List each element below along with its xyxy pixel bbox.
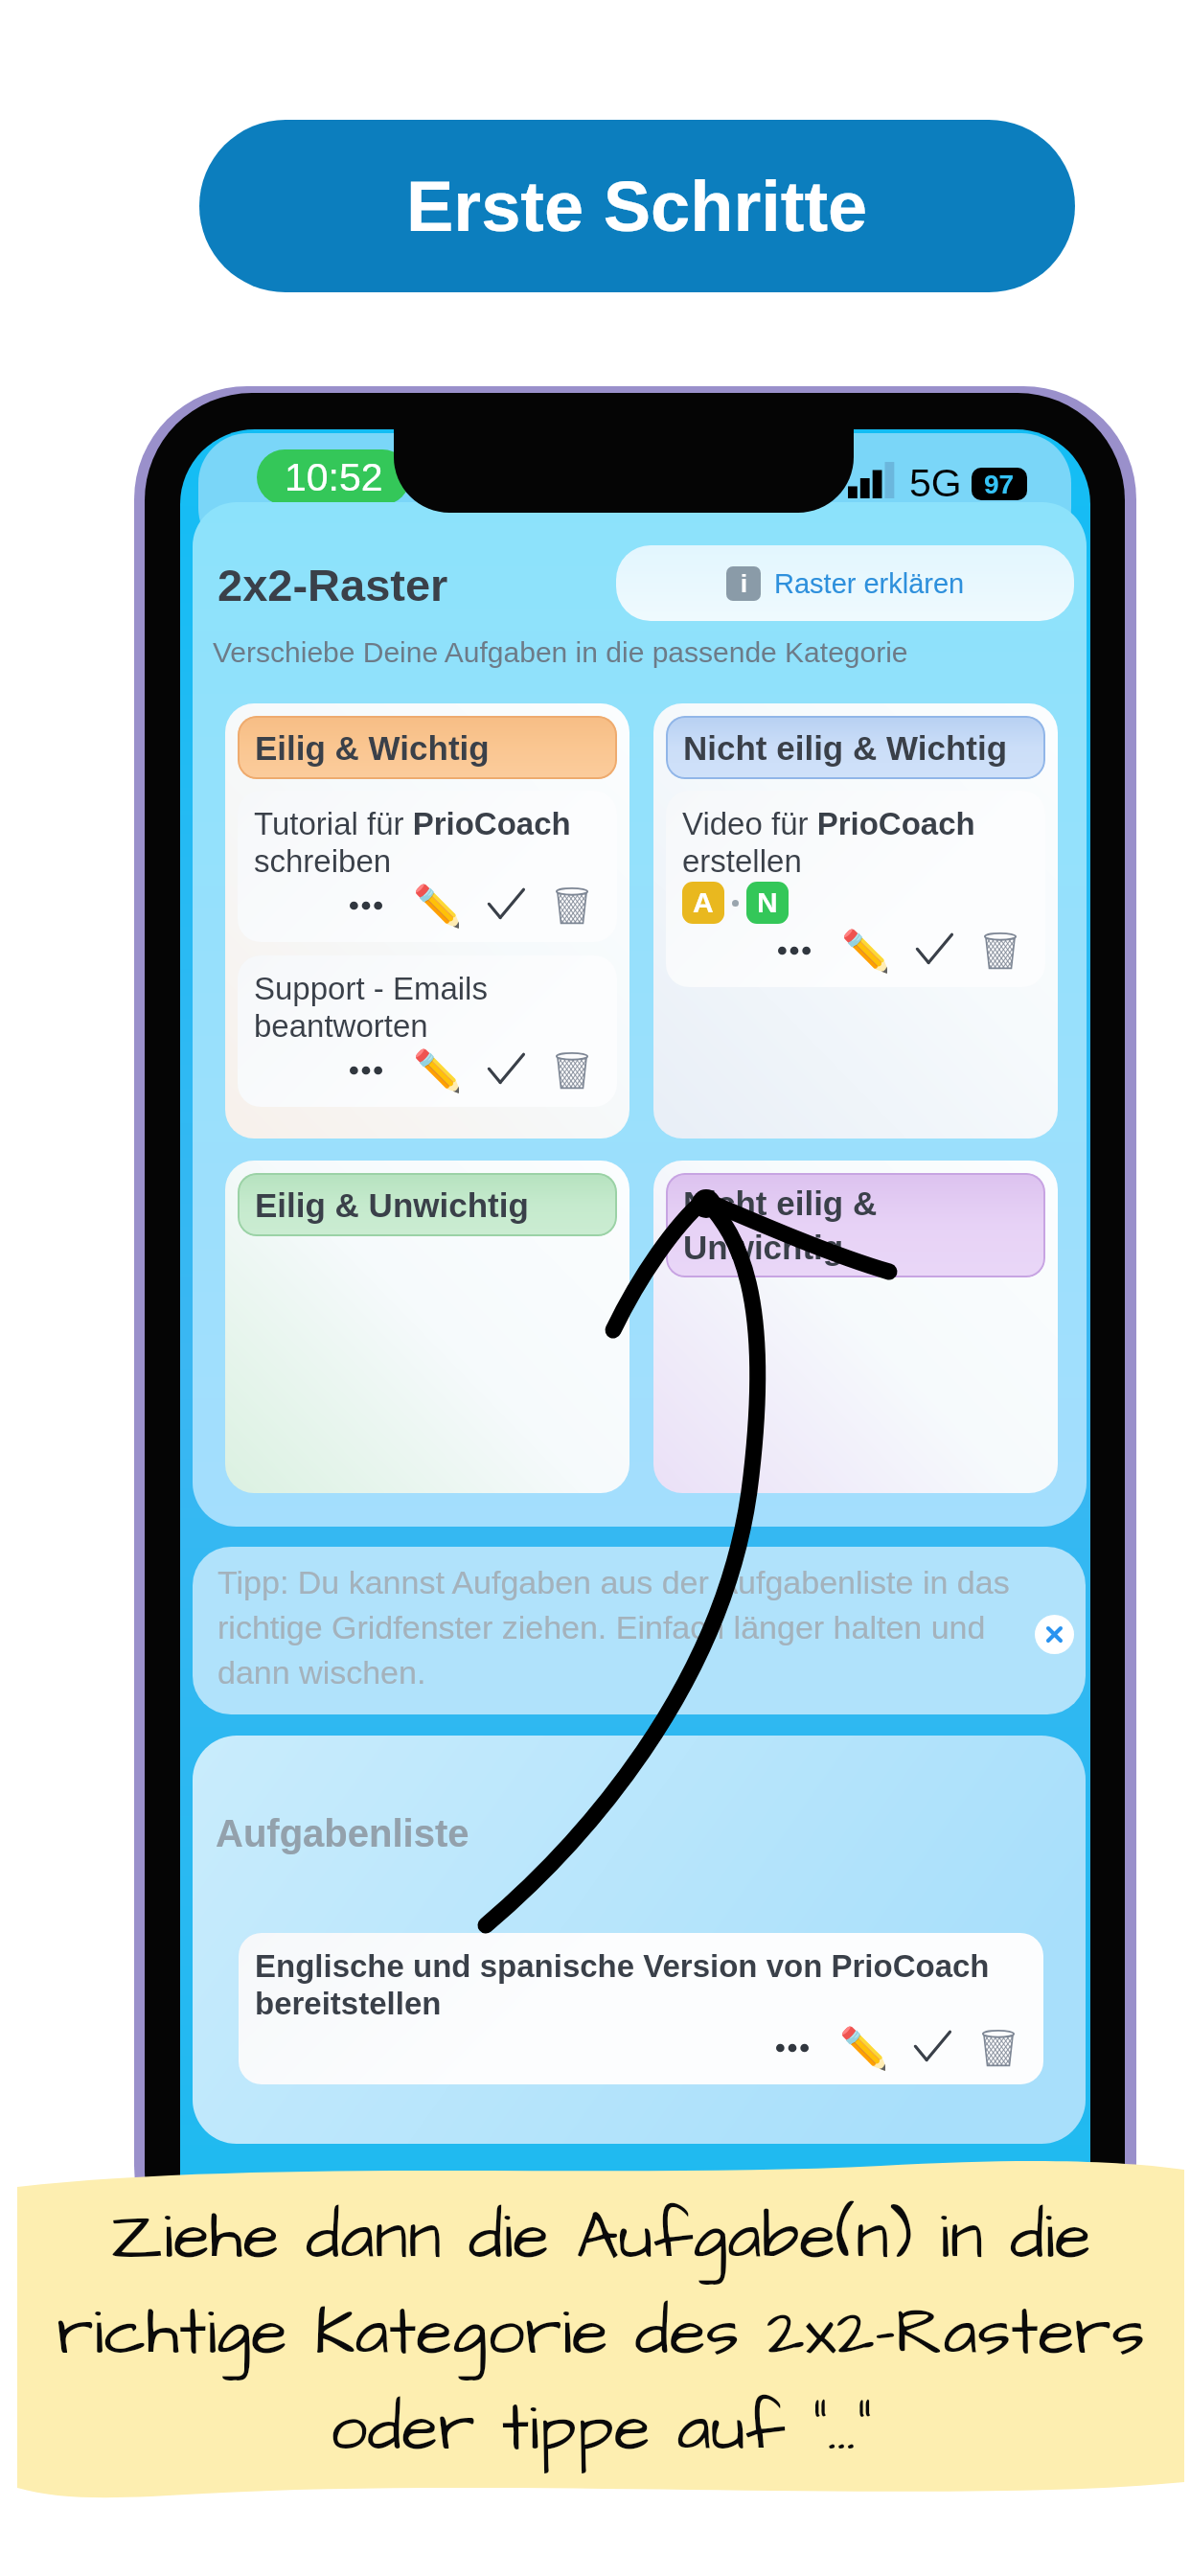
- staticText: 10:52: [285, 455, 383, 499]
- button[interactable]: Erste Schritte: [199, 120, 1075, 292]
- button[interactable]: Bearbeiten: [413, 883, 459, 929]
- staticText: Tutorial für PrioCoach schreiben: [254, 806, 604, 879]
- staticText: Nicht eilig & Wichtig: [683, 729, 1008, 767]
- staticText: N: [757, 886, 778, 919]
- staticText: ✏️: [841, 928, 887, 974]
- staticText: 97: [984, 470, 1015, 499]
- staticText: 5G: [909, 461, 962, 505]
- button[interactable]: Bearbeiten: [839, 2025, 885, 2071]
- staticText: Verschiebe Deine Aufgaben in die passend…: [213, 636, 908, 669]
- button[interactable]: Mehr: [344, 883, 388, 929]
- staticText: Video für PrioCoach erstellen: [682, 806, 1032, 879]
- staticText: Aufgabenliste: [216, 1812, 469, 1855]
- staticText: Eilig & Wichtig: [255, 729, 490, 767]
- button[interactable]: Tutorial für PrioCoach schreiben: [238, 791, 617, 942]
- button[interactable]: Mehr: [770, 2025, 814, 2071]
- staticText: Nicht eilig & Unwichtig: [683, 1184, 1028, 1266]
- button[interactable]: Support - Emails beantworten: [238, 955, 617, 1107]
- button[interactable]: Bearbeiten: [841, 928, 887, 974]
- button[interactable]: i: [616, 545, 1074, 621]
- staticText: 2x2-Raster: [217, 560, 448, 610]
- button[interactable]: Erledigt: [910, 2026, 954, 2070]
- button[interactable]: Englische und spanische Version von Prio…: [239, 1933, 1043, 2084]
- staticText: ✏️: [839, 2025, 885, 2071]
- staticText: i: [741, 570, 747, 597]
- button[interactable]: Eilig & Wichtig: [225, 703, 629, 1138]
- button[interactable]: Löschen: [977, 928, 1023, 974]
- staticText: Ziehe dann die Aufgabe(n) in die richtig…: [17, 2191, 1184, 2543]
- button[interactable]: Erledigt: [912, 929, 956, 973]
- staticText: Eilig & Unwichtig: [255, 1186, 529, 1224]
- staticText: Support - Emails beantworten: [254, 971, 604, 1044]
- button[interactable]: Schließen: [1035, 1615, 1074, 1654]
- button[interactable]: Eilig & Unwichtig: [225, 1161, 629, 1493]
- staticText: Tipp: Du kannst Aufgaben aus der Aufgabe…: [217, 1564, 1041, 1690]
- staticText: Erste Schritte: [406, 167, 868, 246]
- button[interactable]: Löschen: [975, 2025, 1021, 2071]
- staticText: ✏️: [413, 883, 459, 929]
- button[interactable]: Bearbeiten: [413, 1047, 459, 1093]
- button[interactable]: Nicht eilig & Unwichtig: [653, 1161, 1058, 1493]
- button[interactable]: Löschen: [549, 1047, 595, 1093]
- button[interactable]: Nicht eilig & Wichtig: [653, 703, 1058, 1138]
- staticText: ✏️: [413, 1047, 459, 1093]
- button[interactable]: Erledigt: [484, 884, 528, 928]
- staticText: A: [693, 886, 714, 919]
- staticText: Englische und spanische Version von Prio…: [255, 1948, 1030, 2021]
- staticText: Raster erklären: [774, 568, 965, 599]
- button[interactable]: Erledigt: [484, 1048, 528, 1092]
- button[interactable]: Löschen: [549, 883, 595, 929]
- button[interactable]: Mehr: [772, 928, 816, 974]
- button[interactable]: Mehr: [344, 1047, 388, 1093]
- button[interactable]: Video für PrioCoach erstellen: [666, 791, 1045, 987]
